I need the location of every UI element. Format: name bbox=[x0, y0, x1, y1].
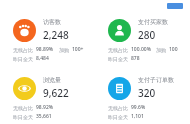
staticText: 9,622 bbox=[43, 86, 69, 100]
staticText: 无线占比 bbox=[108, 105, 128, 111]
staticText: 100.00% bbox=[131, 46, 151, 53]
button[interactable]: 支付买家数 bbox=[95, 16, 190, 62]
staticText: 无线占比 bbox=[13, 105, 33, 111]
other: 浏览量 bbox=[13, 77, 36, 100]
button[interactable]: 访客数 bbox=[0, 16, 95, 62]
other: 支付子订单数 bbox=[108, 77, 131, 100]
other: 支付买家数 bbox=[108, 19, 131, 42]
staticText: 昨日全天 bbox=[13, 56, 33, 62]
staticText: 浏览量 bbox=[43, 76, 61, 84]
staticText: 100 bbox=[169, 46, 178, 53]
button[interactable]: 支付子订单数 bbox=[95, 74, 190, 120]
staticText: 支付子订单数 bbox=[138, 76, 174, 84]
staticText: 加购 bbox=[156, 47, 166, 53]
staticText: 99.6% bbox=[131, 104, 146, 111]
staticText: 98.89% bbox=[36, 46, 54, 53]
staticText: 支付买家数 bbox=[138, 18, 168, 26]
staticText: 无线占比 bbox=[13, 47, 33, 53]
button[interactable]: 浏览量 bbox=[0, 74, 95, 120]
staticText: 35,661 bbox=[36, 113, 52, 120]
staticText: 访客数 bbox=[43, 18, 61, 26]
staticText: 8,484 bbox=[36, 55, 49, 62]
staticText: 320 bbox=[138, 86, 156, 100]
staticText: 无线占比 bbox=[108, 47, 128, 53]
staticText: 98.92% bbox=[36, 104, 54, 111]
staticText: 昨日全天 bbox=[108, 114, 128, 120]
other: 访客数 bbox=[13, 19, 36, 42]
staticText: 昨日全天 bbox=[13, 114, 33, 120]
staticText: 100+ bbox=[72, 46, 84, 53]
staticText: 1,101 bbox=[131, 113, 144, 120]
staticText: 2,248 bbox=[43, 28, 69, 42]
staticText: 878 bbox=[131, 55, 140, 62]
staticText: 昨日全天 bbox=[108, 56, 128, 62]
staticText: 加购 bbox=[59, 47, 69, 53]
button[interactable]: 更多 bbox=[167, 3, 183, 9]
staticText: 280 bbox=[138, 28, 156, 42]
